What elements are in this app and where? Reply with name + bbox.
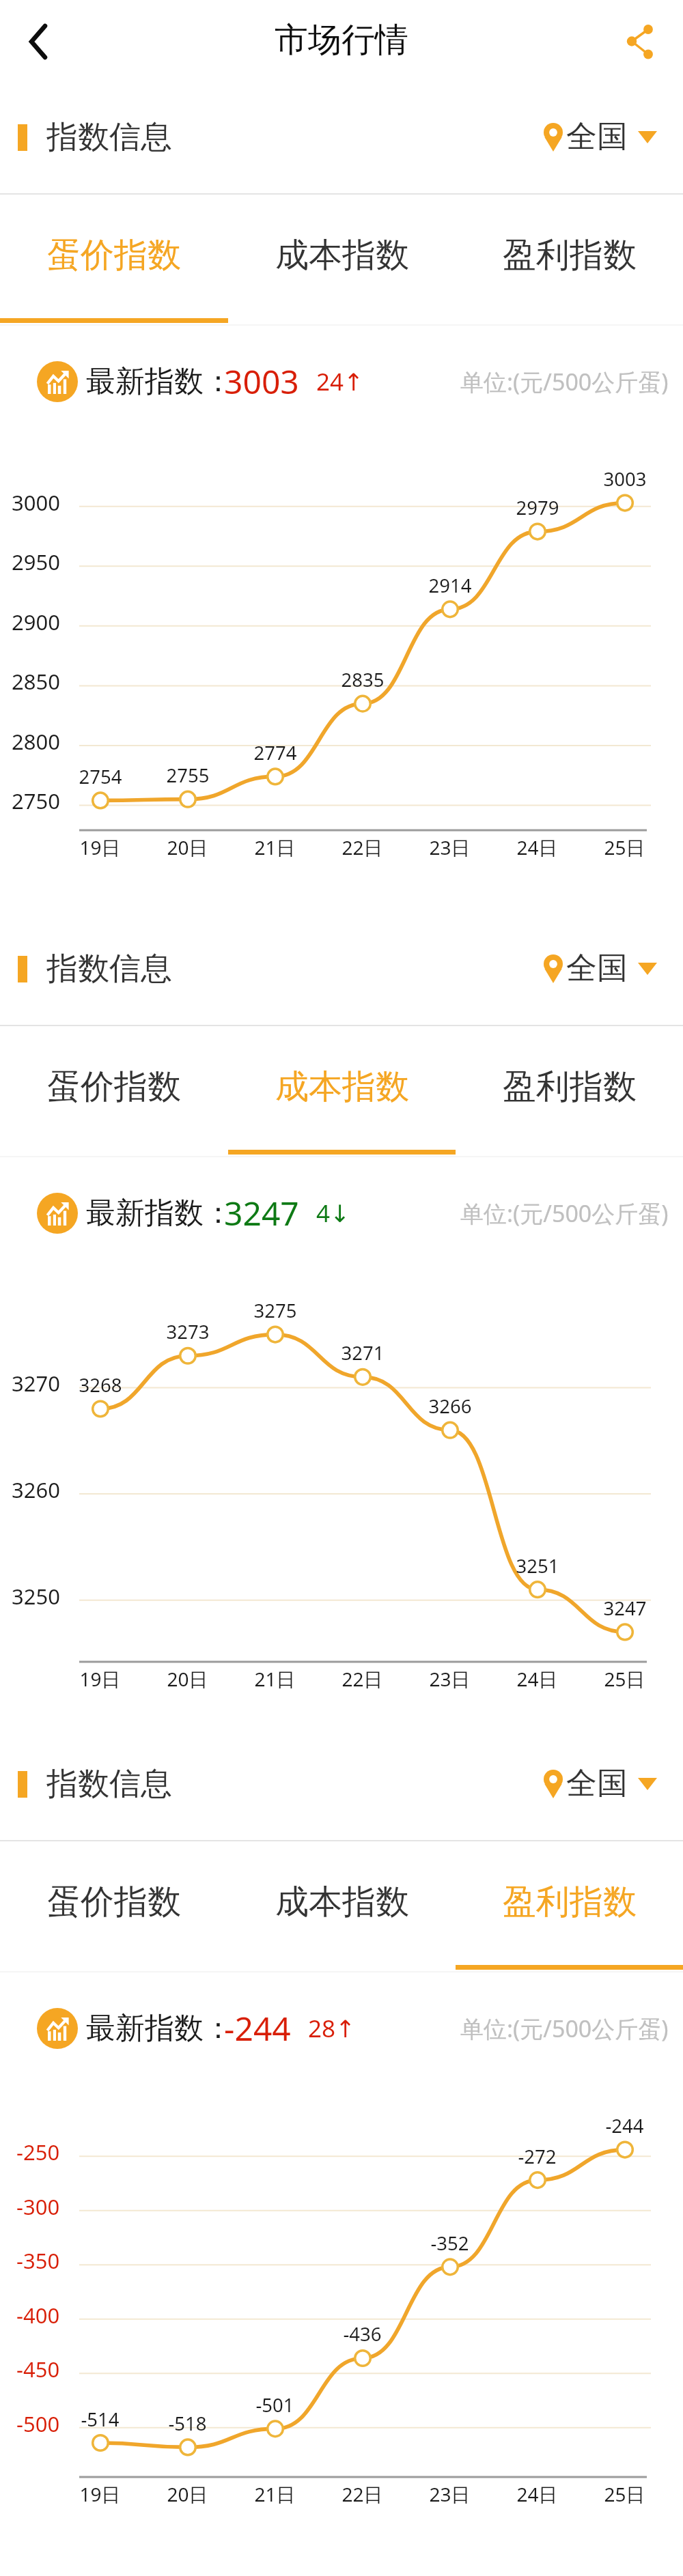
button[interactable]: 全国 <box>544 117 657 156</box>
button[interactable]: 成本指数 <box>228 1026 456 1157</box>
staticText: 盈利指数 <box>503 1881 637 1923</box>
staticText: 最新指数： <box>86 2010 233 2047</box>
staticText: 盈利指数 <box>503 234 637 277</box>
button[interactable]: 全国 <box>544 1764 657 1803</box>
staticText: 全国 <box>566 1764 628 1803</box>
staticText: 蛋价指数 <box>47 234 181 277</box>
staticText: 单位:(元/500公斤蛋) <box>460 1198 669 1229</box>
staticText: 3003 <box>224 359 299 404</box>
staticText: 全国 <box>566 949 628 988</box>
button[interactable]: 成本指数 <box>228 1841 456 1972</box>
button[interactable]: 蛋价指数 <box>0 195 228 326</box>
button[interactable]: 全国 <box>544 949 657 988</box>
staticText: 蛋价指数 <box>47 1881 181 1923</box>
staticText: 市场行情 <box>275 19 408 61</box>
button[interactable]: 蛋价指数 <box>0 1841 228 1972</box>
staticText: 成本指数 <box>275 1066 409 1108</box>
staticText: 最新指数： <box>86 1195 233 1232</box>
staticText: 成本指数 <box>275 234 409 277</box>
button[interactable]: Back <box>0 0 79 90</box>
staticText: 蛋价指数 <box>47 1066 181 1108</box>
button[interactable]: Share <box>604 0 683 90</box>
staticText: 全国 <box>566 117 628 156</box>
button[interactable]: 盈利指数 <box>456 1841 683 1972</box>
button[interactable]: 成本指数 <box>228 195 456 326</box>
staticText: 28↑ <box>308 2012 356 2045</box>
staticText: 成本指数 <box>275 1881 409 1923</box>
staticText: 3247 <box>224 1191 299 1235</box>
staticText: 最新指数： <box>86 363 233 400</box>
staticText: 单位:(元/500公斤蛋) <box>460 366 669 397</box>
button[interactable]: 蛋价指数 <box>0 1026 228 1157</box>
staticText: 4↓ <box>316 1197 350 1230</box>
staticText: 单位:(元/500公斤蛋) <box>460 2013 669 2044</box>
staticText: 24↑ <box>316 365 364 398</box>
staticText: -244 <box>224 2006 291 2050</box>
button[interactable]: 盈利指数 <box>456 1026 683 1157</box>
staticText: 盈利指数 <box>503 1066 637 1108</box>
staticText: 指数信息 <box>46 117 172 157</box>
staticText: 指数信息 <box>46 949 172 989</box>
staticText: 指数信息 <box>46 1764 172 1804</box>
button[interactable]: 盈利指数 <box>456 195 683 326</box>
